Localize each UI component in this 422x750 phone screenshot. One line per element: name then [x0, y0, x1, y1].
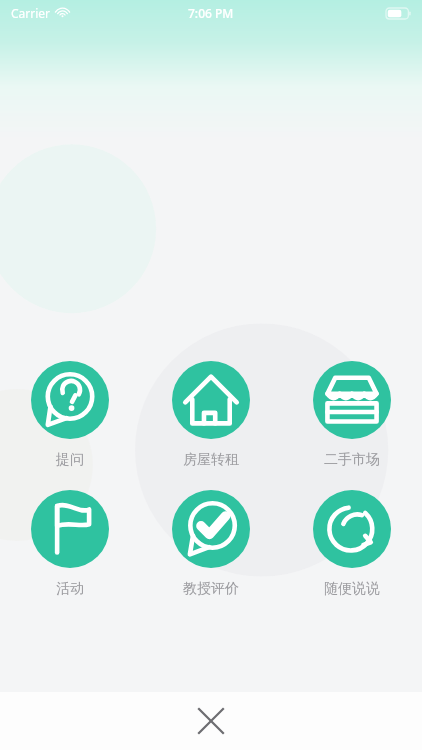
staticText: Carrier: [11, 5, 51, 21]
button[interactable]: 活动: [14, 490, 126, 598]
button[interactable]: 随便说说: [296, 490, 408, 598]
staticText: 随便说说: [324, 580, 380, 598]
button[interactable]: 教授评价: [155, 490, 267, 598]
staticText: 7:06 PM: [188, 5, 234, 21]
button[interactable]: Close: [185, 695, 237, 747]
button[interactable]: 房屋转租: [155, 361, 267, 469]
staticText: 二手市场: [324, 451, 380, 469]
staticText: 活动: [56, 580, 84, 598]
button[interactable]: 提问: [14, 361, 126, 469]
button[interactable]: 二手市场: [296, 361, 408, 469]
staticText: 房屋转租: [183, 451, 239, 469]
staticText: 教授评价: [183, 580, 239, 598]
staticText: 提问: [56, 451, 84, 469]
